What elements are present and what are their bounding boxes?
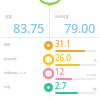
staticText: 31.1 [55,38,71,49]
button[interactable]: 体脂肪率 [0,52,100,66]
staticText: BMI [4,43,11,47]
staticText: 26.0 [55,52,71,63]
staticText: 内臓脂肪レベル [4,71,27,75]
staticText: 4.8 [44,0,56,2]
staticText: 2.7 [55,80,67,91]
staticText: % [94,59,97,63]
staticText: 83.75 [13,20,44,36]
button[interactable]: Progress 4.8 kg [38,0,62,6]
button[interactable]: 骨量 [0,80,100,94]
staticText: kg [48,2,53,6]
staticText: 12 [55,66,65,77]
staticText: 体重 [5,15,12,19]
staticText: 骨量 [4,85,11,89]
staticText: kg [93,87,97,91]
staticText: 79.00 [64,20,95,36]
staticText: レベル [87,73,97,77]
button[interactable]: 内臓脂肪レベル [0,66,100,80]
button[interactable]: 目標体重 [50,15,100,36]
button[interactable]: BMI [0,38,100,52]
staticText: 目標体重 [55,15,69,19]
button[interactable]: 体重 [0,15,49,36]
staticText: 体脂肪率 [4,57,17,61]
